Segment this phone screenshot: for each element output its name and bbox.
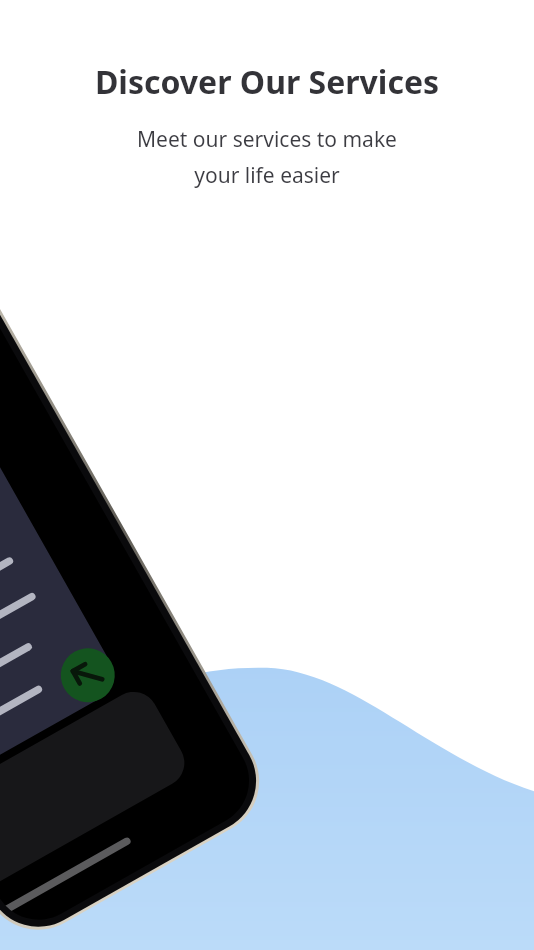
button[interactable]: Open service (145, 677, 197, 729)
staticText: Discover Our Services (20, 60, 514, 104)
staticText: Meet our services to make your life easi… (20, 125, 514, 189)
